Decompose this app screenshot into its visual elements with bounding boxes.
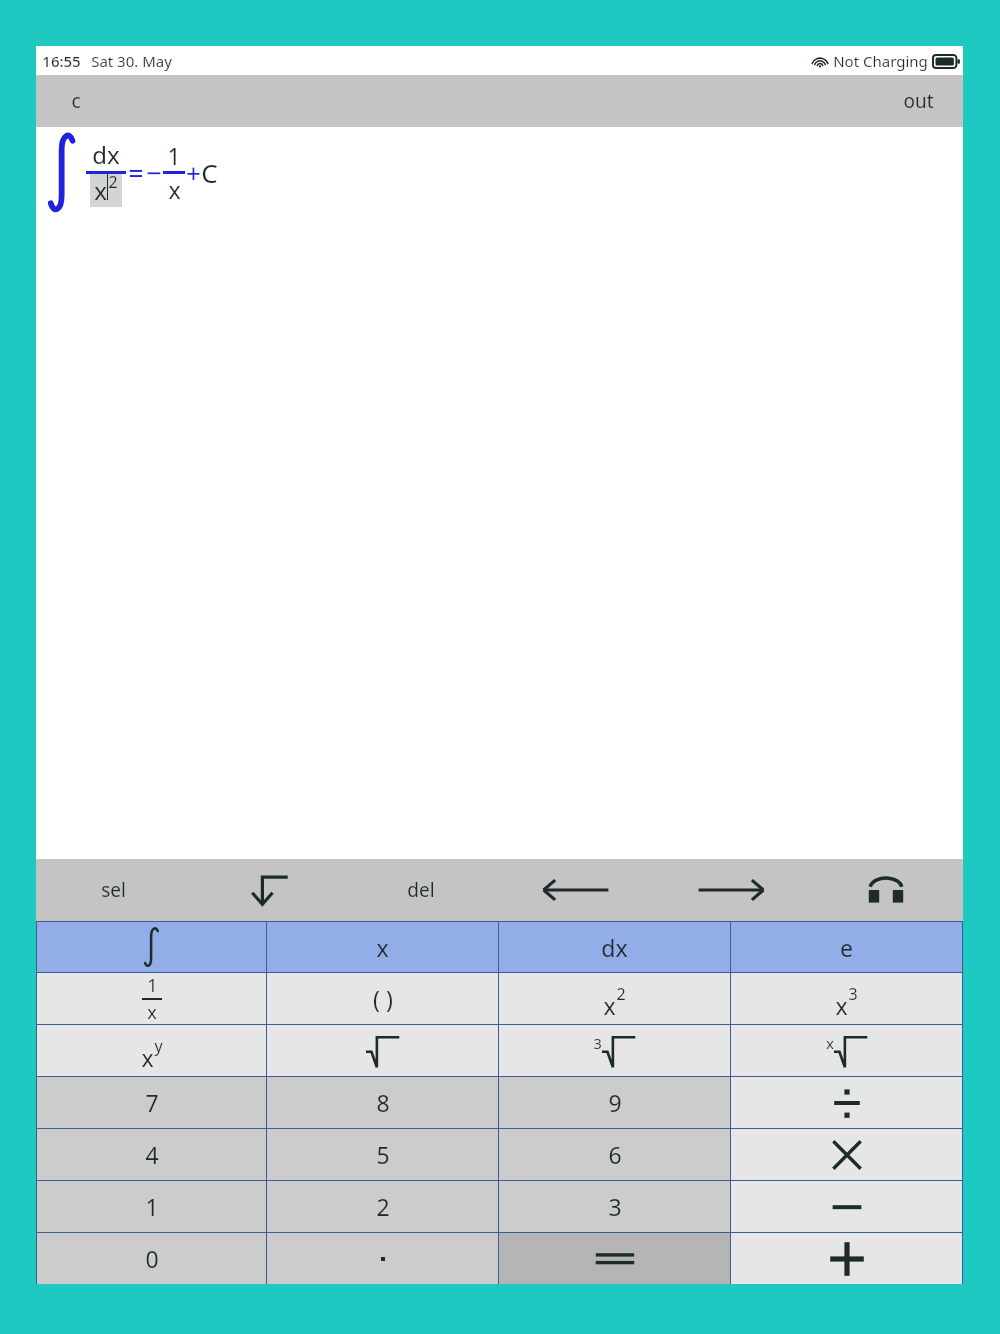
button[interactable]: out bbox=[873, 75, 963, 127]
button[interactable]: Move left bbox=[498, 859, 653, 921]
button[interactable]: Integral bbox=[37, 922, 266, 972]
button[interactable]: c bbox=[36, 75, 116, 127]
button[interactable]: Hide keyboard bbox=[808, 859, 963, 921]
button[interactable]: 0 bbox=[37, 1233, 266, 1284]
staticText: Not Charging bbox=[833, 51, 928, 71]
button[interactable]: Minus bbox=[731, 1181, 962, 1232]
button[interactable]: x bbox=[37, 1025, 266, 1076]
staticText: sel bbox=[101, 877, 126, 903]
button[interactable]: 1 bbox=[37, 1181, 266, 1232]
staticText: x bbox=[141, 1042, 154, 1073]
staticText: 0 bbox=[145, 1243, 159, 1274]
button[interactable]: Move right bbox=[653, 859, 808, 921]
button[interactable]: del bbox=[344, 859, 498, 921]
button[interactable]: Root 3 bbox=[499, 1025, 730, 1076]
button[interactable]: ( ) bbox=[267, 973, 498, 1024]
staticText: Sat 30. May bbox=[91, 51, 172, 71]
staticText: del bbox=[407, 877, 435, 903]
staticText: 2 bbox=[376, 1191, 390, 1222]
staticText: x bbox=[603, 990, 616, 1021]
staticText: x bbox=[835, 990, 848, 1021]
button[interactable]: e bbox=[731, 922, 962, 972]
button[interactable]: Equals bbox=[499, 1233, 730, 1284]
staticText: = bbox=[128, 154, 144, 191]
button[interactable]: 5 bbox=[267, 1129, 498, 1180]
staticText: 2 bbox=[108, 171, 118, 193]
staticText: 1 bbox=[167, 140, 181, 171]
button[interactable]: 4 bbox=[37, 1129, 266, 1180]
button[interactable]: 3 bbox=[499, 1181, 730, 1232]
staticText: 2 bbox=[616, 983, 626, 1005]
staticText: x bbox=[826, 1033, 834, 1053]
button[interactable]: Divide bbox=[731, 1077, 962, 1128]
button[interactable]: 2 bbox=[267, 1181, 498, 1232]
staticText: 9 bbox=[608, 1087, 622, 1118]
staticText: 1 bbox=[147, 973, 158, 998]
staticText: 7 bbox=[145, 1087, 159, 1118]
staticText: x bbox=[94, 174, 107, 207]
staticText: x bbox=[147, 1000, 157, 1024]
staticText: 3 bbox=[593, 1033, 602, 1053]
staticText: 3 bbox=[848, 983, 858, 1005]
staticText: x bbox=[376, 932, 389, 963]
button[interactable]: Multiply bbox=[731, 1129, 962, 1180]
staticText: x bbox=[168, 174, 181, 205]
button[interactable]: Decimal point bbox=[267, 1233, 498, 1284]
button[interactable]: 9 bbox=[499, 1077, 730, 1128]
staticText: 6 bbox=[608, 1139, 622, 1170]
staticText: c bbox=[71, 88, 81, 114]
staticText: out bbox=[903, 88, 934, 114]
button[interactable]: dx bbox=[499, 922, 730, 972]
staticText: 4 bbox=[145, 1139, 159, 1170]
staticText: C bbox=[201, 155, 218, 190]
button[interactable]: 6 bbox=[499, 1129, 730, 1180]
staticText: 16:55 bbox=[42, 51, 81, 71]
button[interactable]: x bbox=[499, 973, 730, 1024]
button[interactable]: 8 bbox=[267, 1077, 498, 1128]
staticText: 8 bbox=[376, 1087, 390, 1118]
staticText: + bbox=[186, 155, 201, 190]
staticText: − bbox=[146, 154, 162, 191]
staticText: 3 bbox=[608, 1191, 622, 1222]
button[interactable]: x bbox=[731, 973, 962, 1024]
button[interactable]: sel bbox=[36, 859, 190, 921]
button[interactable]: Square root bbox=[267, 1025, 498, 1076]
staticText: ( ) bbox=[373, 983, 393, 1014]
button[interactable]: One over x bbox=[37, 973, 266, 1024]
button[interactable]: 7 bbox=[37, 1077, 266, 1128]
button[interactable]: Root x bbox=[731, 1025, 962, 1076]
staticText: dx bbox=[92, 138, 120, 171]
button[interactable]: Enter bbox=[190, 859, 344, 921]
button[interactable]: x bbox=[267, 922, 498, 972]
staticText: 5 bbox=[376, 1139, 390, 1170]
staticText: e bbox=[840, 932, 853, 963]
staticText: 1 bbox=[145, 1191, 159, 1222]
button[interactable]: Plus bbox=[731, 1233, 962, 1284]
staticText: dx bbox=[601, 932, 628, 963]
staticText: y bbox=[154, 1035, 163, 1057]
